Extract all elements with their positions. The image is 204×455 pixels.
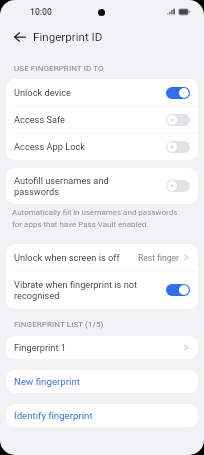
staticText: Rest finger — [138, 253, 180, 263]
button[interactable]: New fingerprint — [6, 370, 198, 393]
staticText: Autofill usernames and passwords — [14, 175, 130, 197]
staticText: Unlock device — [14, 87, 166, 98]
staticText: New fingerprint — [14, 376, 80, 387]
staticText: FINGERPRINT LIST (1/5) — [14, 320, 104, 329]
button[interactable]: Identify fingerprint — [6, 404, 198, 427]
button[interactable]: Access Safe — [6, 106, 198, 133]
staticText: USE FINGERPRINT ID TO — [14, 64, 104, 73]
staticText: Access Safe — [14, 114, 166, 125]
button[interactable]: Vibrate when fingerprint is not recognis… — [6, 271, 198, 309]
staticText: Unlock when screen is off — [14, 252, 138, 263]
button[interactable]: Unlock when screen is off — [6, 244, 198, 271]
button[interactable]: Unlock device — [6, 79, 198, 106]
button[interactable]: Autofill usernames and passwords — [6, 168, 198, 204]
button[interactable]: Fingerprint 1 — [6, 336, 198, 359]
staticText: Fingerprint 1 — [14, 342, 183, 353]
button[interactable]: Back — [11, 28, 29, 46]
staticText: Vibrate when fingerprint is not recognis… — [14, 279, 158, 301]
staticText: Identify fingerprint — [14, 410, 93, 421]
staticText: Automatically fill in usernames and pass… — [12, 208, 184, 229]
button[interactable]: Access App Lock — [6, 133, 198, 160]
staticText: 10:00 — [30, 7, 52, 17]
staticText: Access App Lock — [14, 141, 166, 152]
staticText: Fingerprint ID — [33, 30, 103, 44]
